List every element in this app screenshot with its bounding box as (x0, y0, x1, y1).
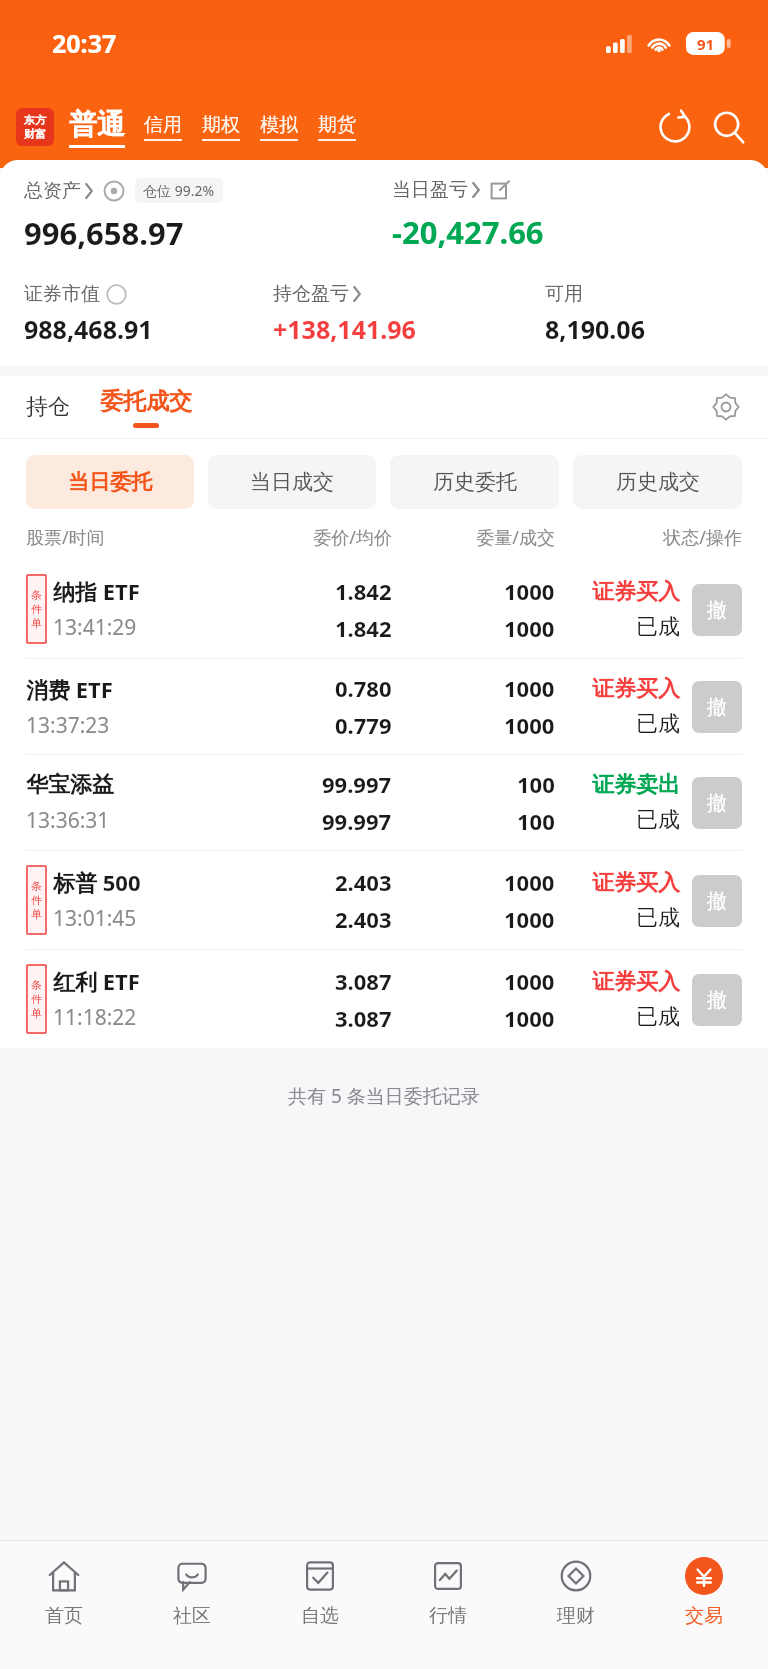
button[interactable]: 当日盈亏 (392, 178, 510, 202)
staticText: 13:01:45 (53, 904, 137, 933)
button[interactable]: Refresh (652, 104, 698, 150)
staticText: 期权 (202, 113, 240, 137)
staticText: 13:36:31 (26, 806, 110, 835)
staticText: 13:41:29 (53, 613, 137, 642)
staticText: 当日委托 (68, 469, 152, 495)
button[interactable]: 委托成交 (96, 387, 196, 428)
staticText: 1000 (504, 966, 555, 996)
button[interactable]: 期货 (315, 113, 359, 141)
staticText: 纳指 ETF (53, 576, 140, 606)
button[interactable]: 条 (0, 560, 768, 658)
staticText: 100 (517, 769, 555, 799)
staticText: 委托成交 (100, 387, 192, 416)
staticText: 撤 (707, 598, 727, 623)
staticText: 状态/操作 (555, 525, 742, 550)
staticText: 历史成交 (616, 469, 700, 495)
button[interactable]: 华宝添益 (0, 755, 768, 850)
staticText: 已成 (636, 710, 680, 738)
staticText: 2.403 (335, 904, 392, 934)
staticText: 委价/均价 (229, 525, 392, 550)
staticText: 100 (517, 806, 555, 836)
staticText: 1000 (504, 867, 555, 897)
button[interactable]: 消费 ETF (0, 659, 768, 754)
button[interactable]: 总资产 (24, 178, 223, 203)
staticText: 自选 (301, 1604, 339, 1628)
button[interactable]: 社区 (128, 1541, 256, 1669)
staticText: 单 (31, 907, 42, 921)
button[interactable]: 东方 (16, 108, 54, 146)
staticText: 件 (31, 602, 42, 616)
staticText: 标普 500 (53, 867, 141, 897)
staticText: 红利 ETF (53, 966, 140, 996)
button[interactable]: 撤 (692, 681, 742, 733)
staticText: 0.779 (335, 710, 392, 740)
staticText: 撤 (707, 889, 727, 914)
button[interactable]: 期权 (199, 113, 243, 141)
staticText: 消费 ETF (26, 674, 113, 704)
staticText: 已成 (636, 806, 680, 834)
staticText: 1000 (504, 576, 555, 606)
button[interactable]: 撤 (692, 584, 742, 636)
staticText: 股票/时间 (26, 525, 229, 550)
button[interactable]: 理财 (512, 1541, 640, 1669)
button[interactable]: 撤 (692, 974, 742, 1026)
button[interactable]: Settings (704, 385, 748, 429)
staticText: 1000 (504, 673, 555, 703)
staticText: 财富 (24, 127, 46, 141)
staticText: 已成 (636, 904, 680, 932)
staticText: 撤 (707, 988, 727, 1013)
staticText: 证券买入 (592, 578, 680, 606)
button[interactable]: 条 (0, 851, 768, 949)
staticText: 信用 (144, 113, 182, 137)
staticText: 当日盈亏 (392, 178, 468, 202)
button[interactable]: 历史成交 (573, 455, 742, 509)
button[interactable]: 持仓盈亏 (273, 282, 361, 306)
staticText: 首页 (45, 1604, 83, 1628)
staticText: 99.997 (322, 769, 392, 799)
button[interactable]: 自选 (256, 1541, 384, 1669)
button[interactable]: 历史委托 (390, 455, 559, 509)
staticText: 普通 (69, 107, 125, 142)
staticText: 证券买入 (592, 675, 680, 703)
button[interactable]: 当日委托 (26, 455, 194, 509)
button[interactable]: 持仓 (22, 393, 74, 421)
button[interactable]: 条 (0, 950, 768, 1048)
staticText: 件 (31, 992, 42, 1006)
staticText: 条 (31, 879, 42, 893)
button[interactable]: 信用 (141, 113, 185, 141)
staticText: 证券买入 (592, 968, 680, 996)
staticText: 1000 (504, 904, 555, 934)
staticText: 行情 (429, 1604, 467, 1628)
staticText: 撤 (707, 695, 727, 720)
staticText: 证券市值 (24, 282, 100, 306)
staticText: 13:37:23 (26, 711, 110, 740)
button[interactable]: 普通 (67, 107, 127, 148)
staticText: 仓位 99.2% (143, 181, 215, 200)
button[interactable]: 模拟 (257, 113, 301, 141)
staticText: 理财 (557, 1604, 595, 1628)
button[interactable]: 行情 (384, 1541, 512, 1669)
staticText: 条 (31, 588, 42, 602)
staticText: 99.997 (322, 806, 392, 836)
staticText: 11:18:22 (53, 1003, 137, 1032)
staticText: 1.842 (335, 613, 392, 643)
button[interactable]: 交易 (640, 1541, 768, 1669)
staticText: 期货 (318, 113, 356, 137)
button[interactable]: 首页 (0, 1541, 128, 1669)
staticText: 91 (697, 34, 715, 54)
button[interactable]: 撤 (692, 777, 742, 829)
staticText: 20:37 (52, 26, 117, 60)
staticText: 8,190.06 (545, 312, 645, 346)
button[interactable]: 撤 (692, 875, 742, 927)
staticText: 证券卖出 (592, 771, 680, 799)
staticText: 988,468.91 (24, 312, 153, 346)
staticText: 已成 (636, 613, 680, 641)
button[interactable]: 当日成交 (208, 455, 376, 509)
staticText: 委量/成交 (392, 525, 555, 550)
button[interactable]: Search (706, 104, 752, 150)
staticText: 0.780 (335, 673, 392, 703)
staticText: 可用 (545, 282, 583, 306)
staticText: 东方 (24, 113, 46, 127)
staticText: 1000 (504, 710, 555, 740)
staticText: 历史委托 (433, 469, 517, 495)
